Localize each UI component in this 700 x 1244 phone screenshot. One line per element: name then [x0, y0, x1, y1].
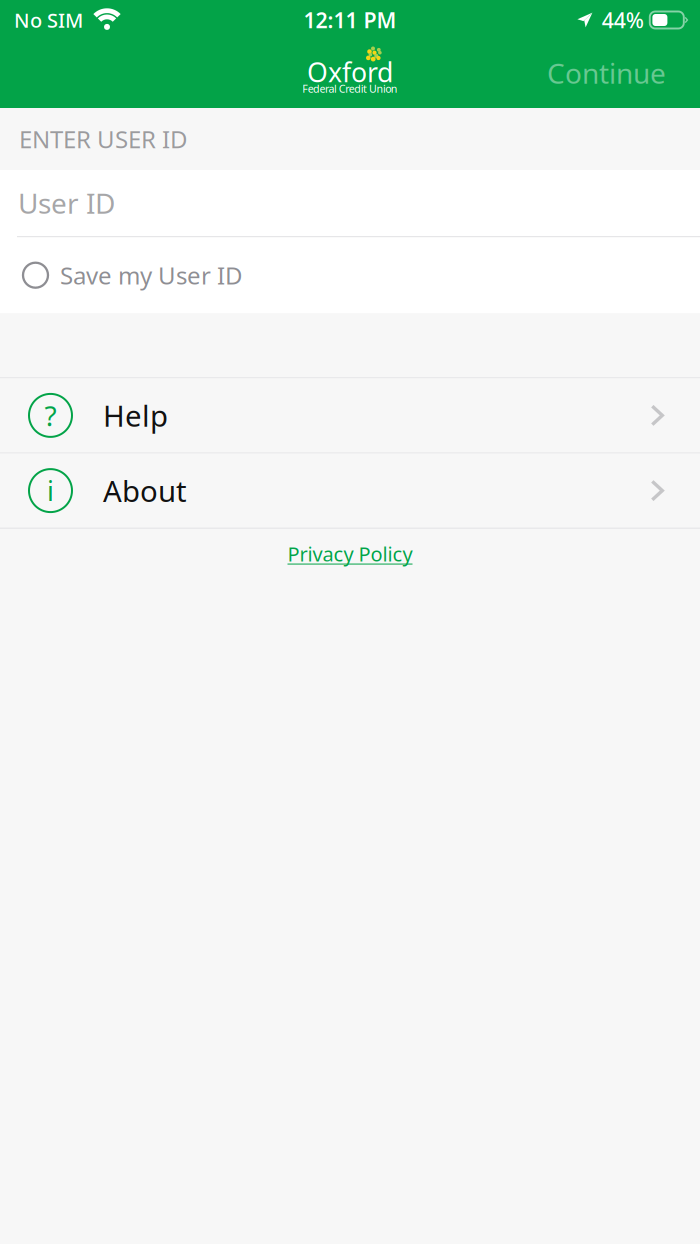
staticText: No SIM — [14, 7, 83, 33]
staticText: Save my User ID — [60, 259, 243, 291]
button[interactable]: i — [0, 454, 700, 528]
staticText: User ID — [18, 184, 115, 222]
staticText: ? — [44, 397, 56, 434]
button[interactable]: ? — [0, 378, 700, 452]
button[interactable]: Privacy Policy — [287, 529, 412, 579]
button[interactable]: Continue — [547, 40, 700, 106]
staticText: ENTER USER ID — [19, 123, 188, 155]
staticText: About — [103, 471, 187, 510]
staticText: 44% — [602, 6, 644, 34]
button[interactable]: Save my User ID — [0, 237, 700, 313]
staticText: 12:11 PM — [303, 6, 396, 34]
staticText: i — [47, 473, 54, 508]
staticText: Oxford — [307, 54, 393, 90]
staticText: Help — [103, 396, 168, 435]
staticText: Continue — [547, 54, 666, 92]
staticText: Privacy Policy — [287, 540, 412, 567]
staticText: Federal Credit Union — [302, 81, 398, 96]
